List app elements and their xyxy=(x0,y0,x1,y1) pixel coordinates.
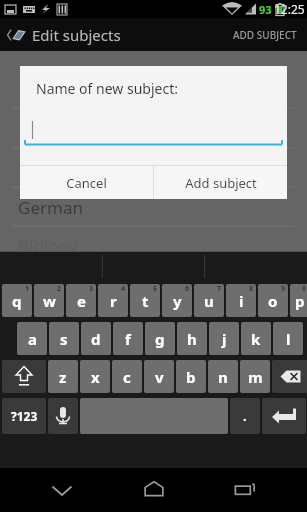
staticText: 6 xyxy=(185,284,190,294)
staticText: z xyxy=(59,367,67,387)
button[interactable]: f xyxy=(113,322,143,355)
button[interactable]: d xyxy=(81,322,111,355)
staticText: k xyxy=(251,329,261,349)
button[interactable]: v xyxy=(144,360,174,393)
staticText: j xyxy=(222,329,227,349)
staticText: m xyxy=(248,367,263,387)
button[interactable]: Recent apps xyxy=(215,468,275,512)
button[interactable]: Voice input xyxy=(48,398,78,434)
staticText: r xyxy=(110,291,117,311)
button[interactable]: l xyxy=(273,322,303,355)
staticText: p xyxy=(295,291,305,311)
staticText: o xyxy=(268,291,278,311)
staticText: a xyxy=(28,329,37,349)
button[interactable]: e xyxy=(66,284,96,317)
staticText: 3 xyxy=(89,284,94,294)
staticText: 7 xyxy=(217,284,222,294)
staticText: w xyxy=(43,291,56,311)
button[interactable]: w xyxy=(34,284,64,317)
staticText: s xyxy=(60,329,68,349)
button[interactable]: Edit subjects xyxy=(0,20,129,50)
button[interactable]: x xyxy=(80,360,110,393)
button[interactable]: ADD SUBJECT xyxy=(223,18,307,51)
staticText: Edit subjects xyxy=(32,25,121,45)
button[interactable]: z xyxy=(48,360,78,393)
staticText: f xyxy=(125,329,131,349)
staticText: 8 xyxy=(249,284,254,294)
staticText: h xyxy=(187,329,197,349)
staticText: 2 xyxy=(57,284,62,294)
button[interactable]: . xyxy=(230,398,260,434)
button[interactable]: Enter xyxy=(262,398,306,434)
button[interactable]: Cancel xyxy=(20,166,153,199)
staticText: q xyxy=(12,291,22,311)
button[interactable]: t xyxy=(130,284,160,317)
button[interactable]: j xyxy=(209,322,239,355)
button[interactable]: b xyxy=(176,360,206,393)
button[interactable]: Home xyxy=(124,468,184,512)
button[interactable]: o xyxy=(258,284,288,317)
button[interactable]: k xyxy=(241,322,271,355)
button[interactable]: y xyxy=(162,284,192,317)
staticText: i xyxy=(239,291,244,311)
button[interactable]: c xyxy=(112,360,142,393)
staticText: c xyxy=(123,367,131,387)
staticText: v xyxy=(155,367,164,387)
staticText: l xyxy=(286,329,291,349)
button[interactable]: Hide keyboard xyxy=(32,468,92,512)
staticText: x xyxy=(91,367,100,387)
staticText: n xyxy=(218,367,228,387)
staticText: Add subject xyxy=(185,174,257,192)
button[interactable]: p xyxy=(290,284,307,317)
staticText: German xyxy=(18,196,83,219)
staticText: ?123 xyxy=(11,408,38,424)
staticText: Cancel xyxy=(66,174,107,192)
staticText: 4 xyxy=(121,284,126,294)
staticText: 1 xyxy=(25,284,30,294)
button[interactable]: ?123 xyxy=(2,398,46,434)
button[interactable]: Add subject xyxy=(154,166,287,199)
staticText: Biology xyxy=(18,234,78,257)
staticText: 0 xyxy=(302,284,307,294)
button[interactable]: i xyxy=(226,284,256,317)
staticText: 5 xyxy=(153,284,158,294)
button[interactable]: q xyxy=(2,284,32,317)
staticText: ADD SUBJECT xyxy=(233,28,297,42)
staticText: e xyxy=(77,291,86,311)
button[interactable]: m xyxy=(240,360,270,393)
button[interactable]: h xyxy=(177,322,207,355)
button[interactable]: a xyxy=(17,322,47,355)
staticText: Name of new subject: xyxy=(36,79,178,98)
staticText: d xyxy=(91,329,101,349)
staticText: . xyxy=(243,407,247,425)
button[interactable]: s xyxy=(49,322,79,355)
staticText: u xyxy=(204,291,214,311)
button[interactable]: Backspace xyxy=(272,360,307,393)
staticText: 12:25 xyxy=(274,1,305,17)
staticText: g xyxy=(155,329,165,349)
staticText: b xyxy=(186,367,196,387)
staticText: t xyxy=(142,291,149,311)
button[interactable]: g xyxy=(145,322,175,355)
button[interactable]: u xyxy=(194,284,224,317)
staticText: 93 xyxy=(259,2,272,17)
button[interactable]: r xyxy=(98,284,128,317)
button[interactable]: n xyxy=(208,360,238,393)
button[interactable]: Shift xyxy=(2,360,46,393)
staticText: 9 xyxy=(281,284,286,294)
staticText: y xyxy=(173,291,182,311)
